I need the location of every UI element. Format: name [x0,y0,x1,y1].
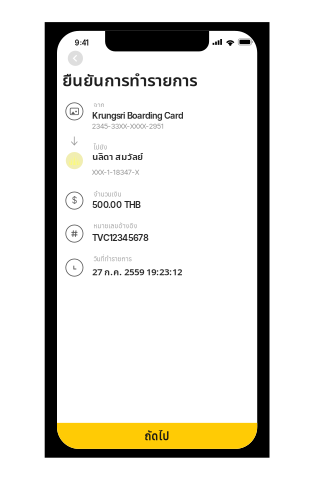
staticText: นลิดา สมวัลย์ [92,150,143,164]
staticText: ยืนยันการทำรายการ [62,69,197,94]
staticText: จาก [93,101,104,109]
staticText: Krungsri Boarding Card [92,110,183,121]
staticText: ไปยัง [93,143,107,151]
staticText: วันที่ทำรายการ [93,254,131,263]
staticText: 9:41 [75,39,89,47]
button[interactable]: ถัดไป [57,423,257,449]
staticText: $ [72,195,77,205]
staticText: 27 ก.ค. 2559 19:23:12 [92,265,182,279]
staticText: ถัดไป [145,429,170,443]
staticText: TVC12345678 [92,232,148,243]
staticText: 500.00 THB [92,199,140,210]
staticText: หมายเลขอ้างอิง [93,221,137,230]
staticText: 2345-33XX-XXXX-2951 [92,122,164,130]
button[interactable]: Back [68,51,83,66]
staticText: จำนวนเงิน [93,190,121,198]
staticText: XXX-1-18347-X [92,168,139,176]
